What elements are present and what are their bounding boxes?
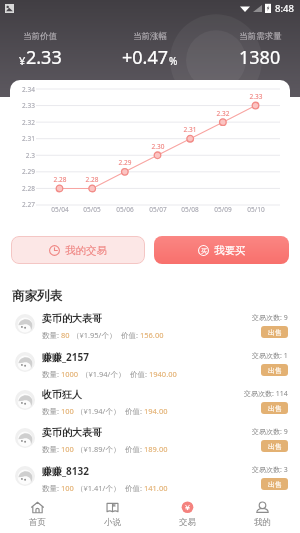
staticText: 141.00 bbox=[144, 483, 168, 493]
staticText: 2.33 bbox=[12, 101, 35, 110]
staticText: 1380 bbox=[239, 45, 281, 70]
staticText: 2.33 bbox=[241, 92, 271, 101]
staticText: 1940.00 bbox=[149, 369, 177, 379]
staticText: 2.28 bbox=[77, 175, 107, 184]
staticText: 交易次数: 3 bbox=[252, 465, 288, 475]
staticText: 交易次数: 9 bbox=[252, 313, 288, 323]
staticText: 2.34 bbox=[12, 85, 35, 94]
staticText: 价值: bbox=[121, 483, 144, 493]
staticText: 80 bbox=[61, 330, 70, 340]
staticText: （¥1.41/个） bbox=[74, 483, 121, 493]
staticText: 8:48 bbox=[275, 2, 294, 15]
staticText: 买 bbox=[201, 247, 207, 255]
staticText: 05/10 bbox=[241, 205, 271, 214]
staticText: 出售 bbox=[268, 442, 282, 451]
button[interactable]: 出售 bbox=[261, 364, 288, 376]
staticText: 交易次数: 9 bbox=[252, 427, 288, 437]
staticText: 数量: bbox=[42, 330, 61, 340]
staticText: 100 bbox=[61, 483, 74, 493]
staticText: % bbox=[169, 54, 178, 68]
staticText: 出售 bbox=[268, 480, 282, 489]
button[interactable]: 赚赚_8132 bbox=[0, 457, 300, 495]
staticText: 当前需求量 bbox=[239, 31, 282, 42]
button[interactable]: 卖币的大表哥 bbox=[0, 419, 300, 457]
staticText: 1000 bbox=[61, 369, 79, 379]
staticText: 价值: bbox=[126, 369, 149, 379]
staticText: 2.27 bbox=[12, 200, 35, 209]
staticText: 我的 bbox=[254, 517, 271, 528]
staticText: 出售 bbox=[268, 328, 282, 337]
staticText: 189.00 bbox=[144, 444, 168, 454]
staticText: 卖币的大表哥 bbox=[42, 312, 102, 325]
staticText: 交易次数: 1 bbox=[252, 351, 288, 361]
staticText: （¥1.94/个） bbox=[79, 369, 126, 379]
button[interactable]: 出售 bbox=[261, 326, 288, 338]
button[interactable]: 交易 bbox=[150, 496, 225, 533]
button[interactable]: 我的交易 bbox=[11, 236, 145, 264]
staticText: 卖币的大表哥 bbox=[42, 426, 102, 439]
staticText: 2.28 bbox=[45, 175, 75, 184]
staticText: 2.3 bbox=[12, 151, 35, 160]
staticText: 2.32 bbox=[12, 118, 35, 127]
button[interactable]: 卖币的大表哥 bbox=[0, 305, 300, 343]
staticText: 05/04 bbox=[45, 205, 75, 214]
staticText: （¥1.95/个） bbox=[70, 330, 117, 340]
button[interactable]: 赚赚_2157 bbox=[0, 343, 300, 381]
staticText: 出售 bbox=[268, 366, 282, 375]
staticText: 05/08 bbox=[175, 205, 205, 214]
staticText: 交易 bbox=[179, 517, 196, 528]
button[interactable]: 出售 bbox=[261, 402, 288, 414]
button[interactable]: 出售 bbox=[261, 440, 288, 452]
button[interactable]: 买 bbox=[154, 236, 289, 264]
staticText: +0.47 bbox=[122, 45, 169, 70]
staticText: 收币狂人 bbox=[42, 388, 82, 401]
staticText: 05/07 bbox=[143, 205, 173, 214]
staticText: 小说 bbox=[104, 517, 121, 528]
staticText: 05/05 bbox=[77, 205, 107, 214]
staticText: 数量: bbox=[42, 483, 61, 493]
button[interactable]: 小说 bbox=[75, 496, 150, 533]
staticText: 数量: bbox=[42, 444, 61, 454]
staticText: 价值: bbox=[117, 330, 140, 340]
staticText: 156.00 bbox=[140, 330, 164, 340]
staticText: 价值: bbox=[121, 444, 144, 454]
staticText: 当前价值 bbox=[23, 31, 57, 42]
staticText: 2.32 bbox=[208, 109, 238, 118]
staticText: 100 bbox=[61, 406, 74, 416]
staticText: 100 bbox=[61, 444, 74, 454]
button[interactable]: 出售 bbox=[261, 478, 288, 490]
staticText: 我的交易 bbox=[65, 244, 107, 257]
staticText: 05/09 bbox=[208, 205, 238, 214]
button[interactable]: 收币狂人 bbox=[0, 381, 300, 419]
staticText: （¥1.89/个） bbox=[74, 444, 121, 454]
staticText: 数量: bbox=[42, 406, 61, 416]
staticText: 商家列表 bbox=[12, 288, 62, 304]
staticText: 交易次数: 114 bbox=[244, 389, 288, 399]
staticText: 赚赚_2157 bbox=[42, 350, 89, 364]
staticText: 当前涨幅 bbox=[133, 31, 167, 42]
staticText: 赚赚_8132 bbox=[42, 464, 89, 478]
staticText: 194.00 bbox=[144, 406, 168, 416]
staticText: 出售 bbox=[268, 404, 282, 413]
staticText: 2.33 bbox=[26, 45, 62, 70]
staticText: （¥1.94/个） bbox=[74, 406, 121, 416]
staticText: 数量: bbox=[42, 369, 61, 379]
staticText: ¥ bbox=[19, 53, 26, 68]
staticText: 价值: bbox=[121, 406, 144, 416]
staticText: 首页 bbox=[29, 517, 46, 528]
staticText: 2.30 bbox=[143, 142, 173, 151]
staticText: 2.29 bbox=[12, 167, 35, 176]
button[interactable]: 首页 bbox=[0, 496, 75, 533]
staticText: 我要买 bbox=[214, 244, 246, 257]
staticText: 2.29 bbox=[110, 158, 140, 167]
staticText: 05/06 bbox=[110, 205, 140, 214]
button[interactable]: 我的 bbox=[225, 496, 300, 533]
staticText: 2.28 bbox=[12, 184, 35, 193]
staticText: 2.31 bbox=[12, 134, 35, 143]
staticText: 2.31 bbox=[175, 125, 205, 134]
